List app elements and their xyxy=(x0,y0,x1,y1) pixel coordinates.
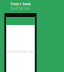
staticText: Smart bank xyxy=(10,2,30,6)
staticText: no transactions yet xyxy=(7,49,34,53)
staticText: built for you xyxy=(11,6,30,10)
